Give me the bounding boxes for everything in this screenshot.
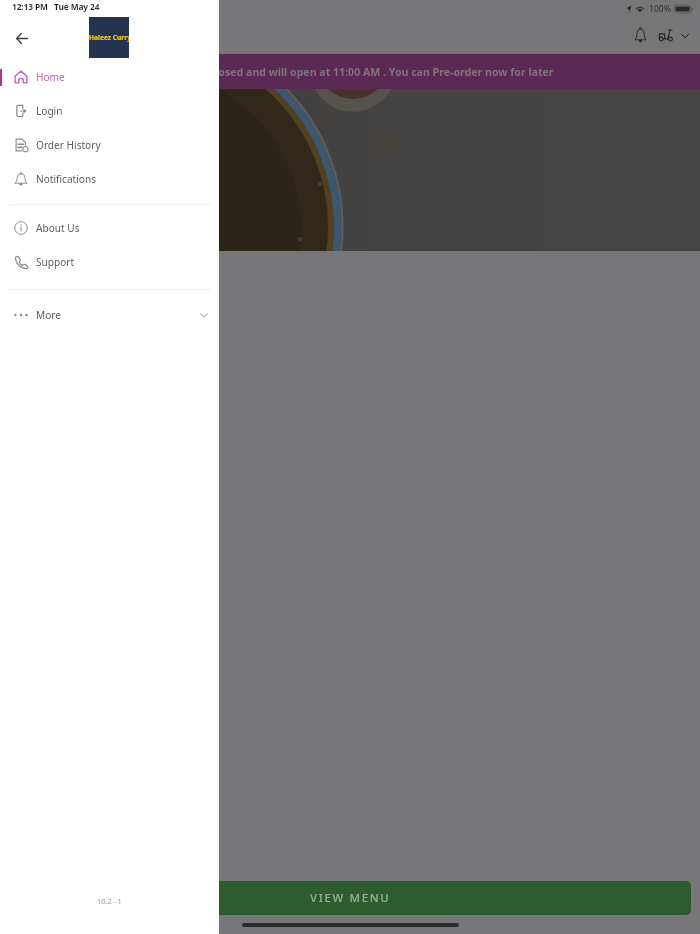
button[interactable]: Expand <box>677 26 693 46</box>
button[interactable]: Support <box>0 245 219 279</box>
staticText: Order History <box>36 138 101 152</box>
staticText: Haleez Curry <box>89 33 129 42</box>
staticText: Support <box>36 255 75 269</box>
button[interactable]: Back <box>8 25 35 52</box>
button[interactable]: Order History <box>0 128 219 162</box>
staticText: 10.2 - 1 <box>97 896 122 906</box>
button[interactable]: VIEW MENU <box>9 881 691 915</box>
staticText: 100% <box>649 3 672 15</box>
button[interactable]: Login <box>0 94 219 128</box>
staticText: 12:13 PM Tue May 24 <box>12 1 100 12</box>
staticText: Notifications <box>36 172 97 186</box>
staticText: Home <box>36 70 65 84</box>
button[interactable]: About Us <box>0 211 219 245</box>
staticText: More <box>36 308 61 322</box>
button[interactable]: Home <box>0 60 219 94</box>
staticText: Currently closed and will open at 11:00 … <box>157 65 554 79</box>
button[interactable]: Notifications <box>0 162 219 196</box>
button[interactable]: More <box>0 298 219 332</box>
staticText: Login <box>36 104 63 118</box>
button[interactable]: Notifications <box>628 22 652 48</box>
staticText: About Us <box>36 221 80 235</box>
button[interactable]: Delivery mode <box>654 24 678 46</box>
staticText: VIEW MENU <box>310 890 391 906</box>
